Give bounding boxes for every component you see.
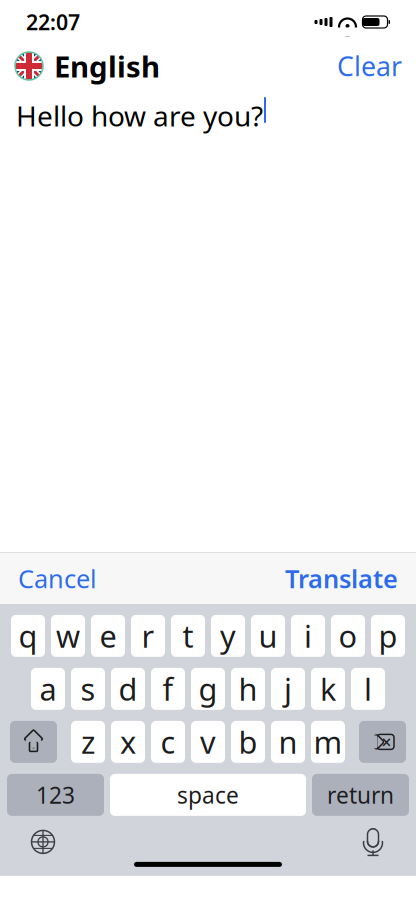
button[interactable]: Translate <box>285 562 398 595</box>
staticText: e <box>99 615 116 656</box>
button[interactable]: f <box>151 668 185 710</box>
button[interactable]: m <box>311 721 345 763</box>
button[interactable]: o <box>331 615 365 657</box>
staticText: k <box>320 668 336 709</box>
staticText: r <box>141 615 154 656</box>
staticText: 22:07 <box>26 8 80 36</box>
button[interactable]: 123 <box>7 774 104 816</box>
button[interactable]: Clear <box>337 48 402 84</box>
button[interactable]: w <box>51 615 85 657</box>
button[interactable]: English <box>14 46 160 85</box>
staticText: f <box>162 668 173 709</box>
staticText: d <box>118 668 137 709</box>
button[interactable]: b <box>231 721 265 763</box>
staticText: b <box>238 721 257 762</box>
staticText: w <box>56 615 80 656</box>
button[interactable]: Delete <box>359 721 406 763</box>
button[interactable]: d <box>111 668 145 710</box>
staticText: Hello how are you? <box>16 97 263 134</box>
button[interactable]: i <box>291 615 325 657</box>
button[interactable]: v <box>191 721 225 763</box>
staticText: s <box>80 668 95 709</box>
staticText: h <box>238 668 257 709</box>
staticText: o <box>338 615 357 656</box>
button[interactable]: e <box>91 615 125 657</box>
staticText: Clear <box>337 48 402 84</box>
staticText: g <box>198 668 217 709</box>
staticText: c <box>160 721 175 762</box>
staticText: a <box>39 668 56 709</box>
staticText: y <box>220 615 236 656</box>
staticText: t <box>182 615 193 656</box>
staticText: Translate <box>285 562 398 595</box>
button[interactable]: y <box>211 615 245 657</box>
staticText: z <box>81 721 95 762</box>
button[interactable]: g <box>191 668 225 710</box>
button[interactable]: n <box>271 721 305 763</box>
staticText: n <box>278 721 297 762</box>
button[interactable]: l <box>351 668 385 710</box>
staticText: Cancel <box>18 562 97 595</box>
button[interactable]: j <box>271 668 305 710</box>
staticText: u <box>258 615 277 656</box>
staticText: i <box>304 615 312 656</box>
button[interactable]: x <box>111 721 145 763</box>
button[interactable]: h <box>231 668 265 710</box>
button[interactable]: Next keyboard <box>23 822 63 862</box>
staticText: English <box>54 46 160 85</box>
button[interactable]: p <box>371 615 405 657</box>
button[interactable]: r <box>131 615 165 657</box>
staticText: p <box>378 615 397 656</box>
button[interactable]: Dictate <box>353 822 393 862</box>
staticText: v <box>200 721 216 762</box>
button[interactable]: k <box>311 668 345 710</box>
staticText: × <box>381 730 391 753</box>
button[interactable]: Cancel <box>18 562 97 595</box>
staticText: x <box>120 721 136 762</box>
staticText: j <box>284 668 292 709</box>
button[interactable]: t <box>171 615 205 657</box>
button[interactable]: Shift <box>10 721 57 763</box>
button[interactable]: c <box>151 721 185 763</box>
staticText: l <box>364 668 372 709</box>
button[interactable]: return <box>312 774 409 816</box>
staticText: q <box>18 615 37 656</box>
staticText: m <box>313 721 342 762</box>
button[interactable]: z <box>71 721 105 763</box>
staticText: space <box>177 780 239 810</box>
button[interactable]: a <box>31 668 65 710</box>
staticText: 123 <box>36 780 75 810</box>
button[interactable]: q <box>11 615 45 657</box>
button[interactable]: s <box>71 668 105 710</box>
button[interactable]: space <box>110 774 306 816</box>
staticText: return <box>327 780 394 810</box>
button[interactable]: u <box>251 615 285 657</box>
